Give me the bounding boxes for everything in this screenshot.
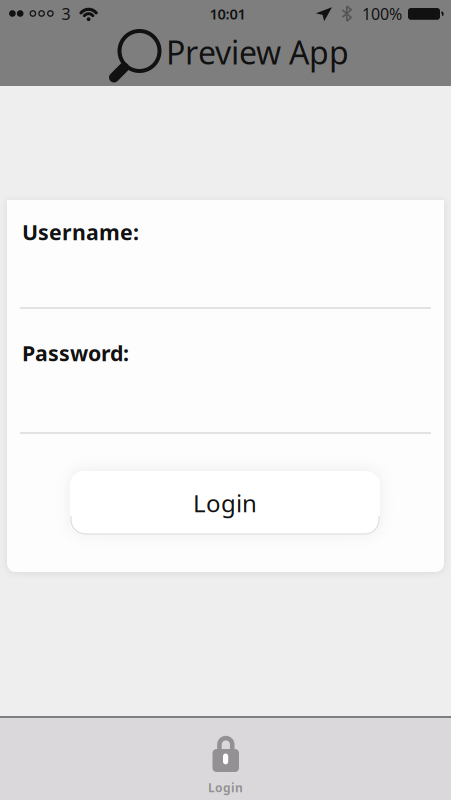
staticText: Username: <box>22 218 139 246</box>
staticText: 100% <box>362 3 402 24</box>
staticText: Login <box>208 779 243 795</box>
staticText: 3 <box>61 3 70 24</box>
button[interactable]: Login <box>180 729 270 799</box>
staticText: Login <box>193 487 257 519</box>
button[interactable]: Login <box>70 471 380 535</box>
staticText: 10:01 <box>209 4 245 24</box>
staticText: Password: <box>22 339 129 367</box>
staticText: Preview App <box>166 31 349 73</box>
